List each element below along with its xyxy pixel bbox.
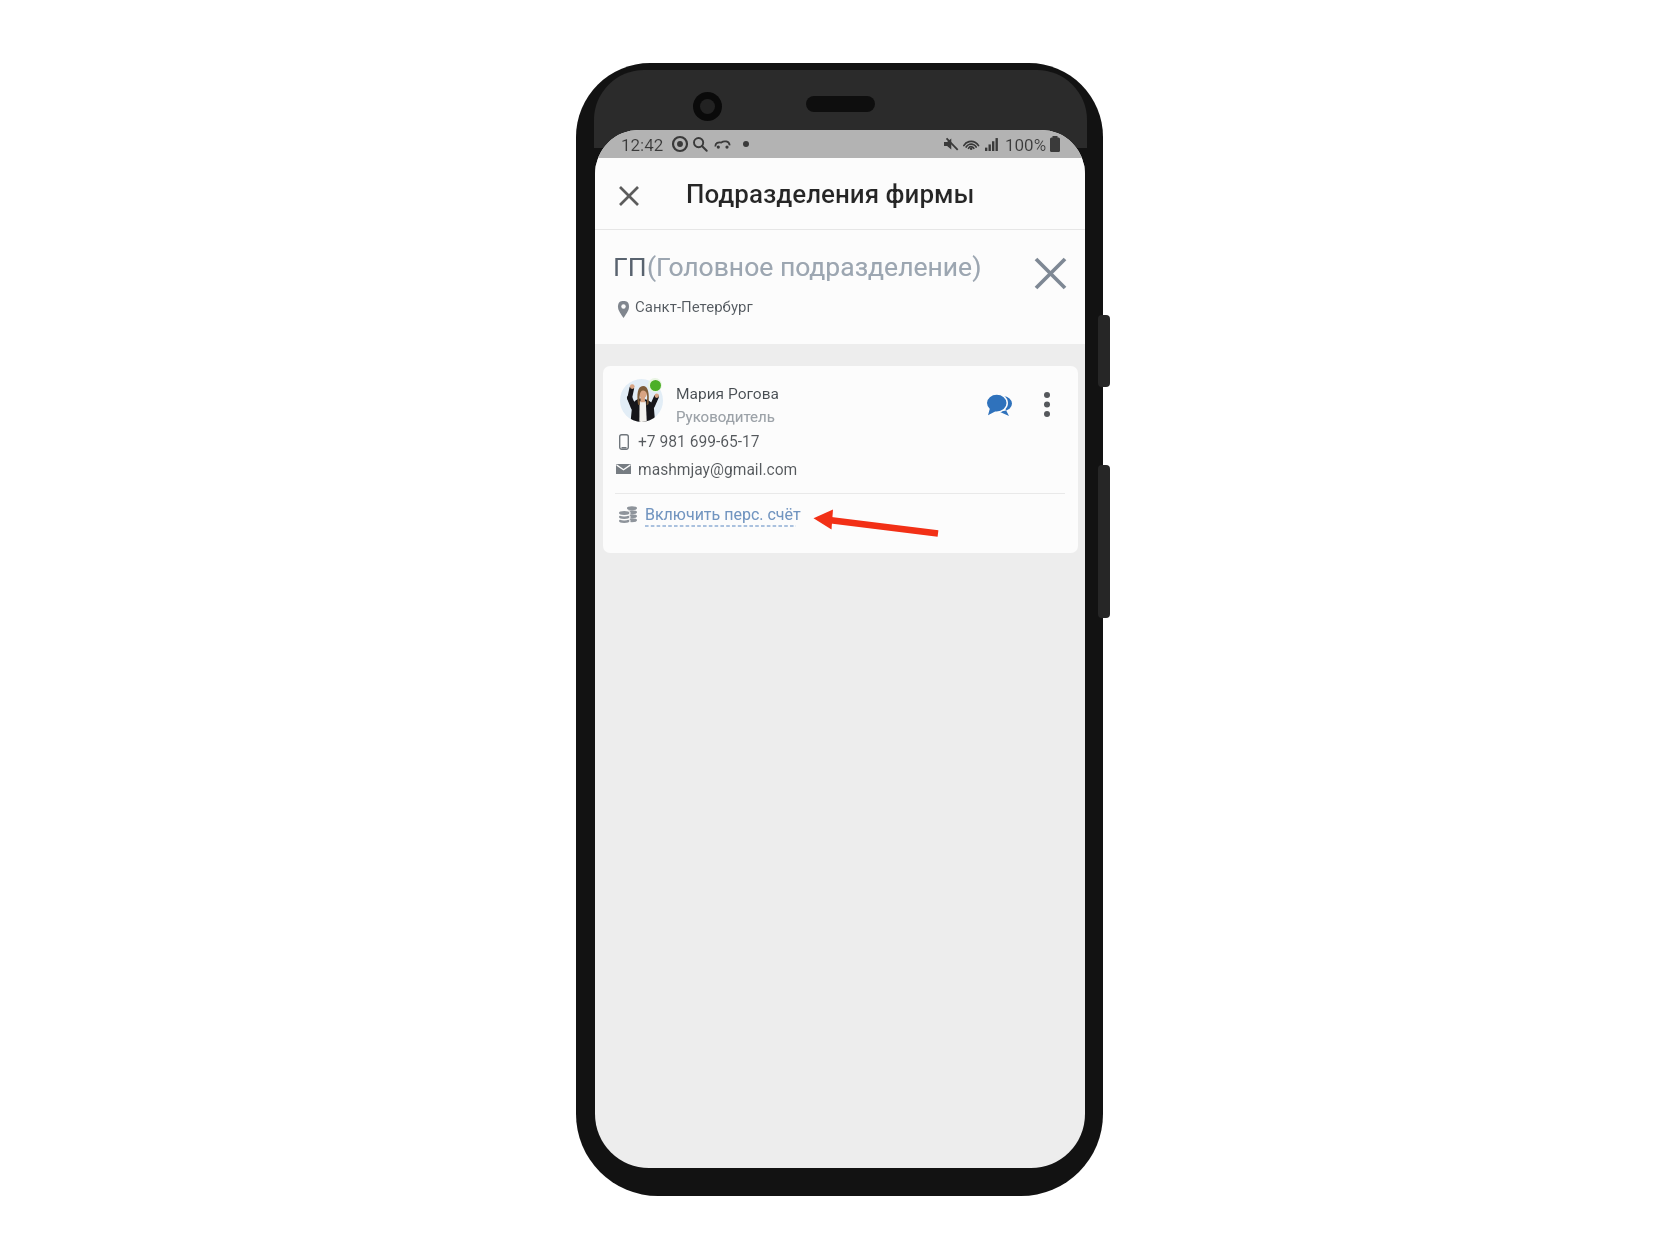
button[interactable]: Включить перс. счёт bbox=[617, 495, 817, 533]
staticText: Подразделения фирмы bbox=[686, 179, 975, 209]
staticText: ГП bbox=[613, 251, 647, 282]
staticText: Включить перс. счёт bbox=[645, 505, 801, 524]
staticText: Руководитель bbox=[676, 408, 775, 426]
staticText: (Головное подразделение) bbox=[647, 251, 982, 282]
button[interactable]: Clear selection bbox=[1027, 250, 1073, 296]
staticText: 100% bbox=[1005, 135, 1047, 155]
staticText: Санкт-Петербург bbox=[635, 298, 753, 316]
staticText: 12:42 bbox=[621, 135, 664, 155]
button[interactable]: More options bbox=[1026, 383, 1068, 425]
staticText: Мария Рогова bbox=[676, 385, 779, 403]
button[interactable]: Chat bbox=[978, 383, 1020, 425]
staticText: +7 981 699-65-17 bbox=[638, 433, 760, 451]
button[interactable]: Мария Рогова bbox=[603, 366, 1078, 553]
button[interactable]: Close bbox=[606, 173, 652, 219]
staticText: mashmjay@gmail.com bbox=[638, 461, 798, 479]
